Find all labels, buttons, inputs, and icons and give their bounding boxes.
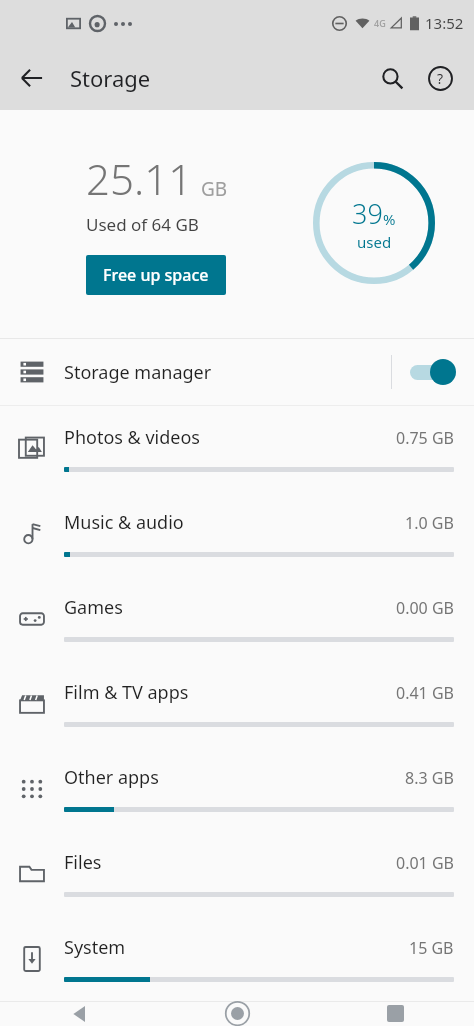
button[interactable]: Photos & videos xyxy=(0,406,474,491)
button[interactable]: Back xyxy=(0,1001,158,1026)
staticText: Music & audio xyxy=(64,510,184,535)
button[interactable]: Free up space xyxy=(86,255,226,295)
button[interactable]: System xyxy=(0,916,474,1001)
button[interactable]: Back xyxy=(8,54,56,102)
staticText: 0.00 GB xyxy=(396,597,454,619)
button[interactable]: Search xyxy=(368,54,416,102)
staticText: 0.01 GB xyxy=(396,852,454,874)
staticText: Used of 64 GB xyxy=(86,213,199,236)
button[interactable]: Music & audio xyxy=(0,491,474,576)
staticText: 25.11 xyxy=(86,150,193,207)
staticText: Games xyxy=(64,595,123,620)
staticText: 0.41 GB xyxy=(396,682,454,704)
staticText: Photos & videos xyxy=(64,425,200,450)
staticText: System xyxy=(64,935,126,960)
staticText: Other apps xyxy=(64,765,159,790)
staticText: 0.75 GB xyxy=(396,427,454,449)
staticText: 39 xyxy=(352,195,383,232)
staticText: % xyxy=(383,209,396,229)
staticText: used xyxy=(357,232,392,252)
button[interactable]: Home xyxy=(158,1001,316,1026)
staticText: ? xyxy=(437,69,444,88)
button[interactable]: Storage manager toggle xyxy=(392,339,474,405)
staticText: 15 GB xyxy=(409,937,454,959)
button[interactable]: Help xyxy=(416,54,464,102)
button[interactable]: Other apps xyxy=(0,746,474,831)
staticText: Files xyxy=(64,850,102,875)
button[interactable]: Film & TV apps xyxy=(0,661,474,746)
staticText: Storage manager xyxy=(64,360,212,385)
staticText: Free up space xyxy=(103,264,209,286)
button[interactable]: Storage manager xyxy=(0,339,474,405)
staticText: 8.3 GB xyxy=(405,767,454,789)
staticText: 1.0 GB xyxy=(405,512,454,534)
staticText: 13:52 xyxy=(425,13,464,33)
button[interactable]: Games xyxy=(0,576,474,661)
staticText: Film & TV apps xyxy=(64,680,189,705)
button[interactable]: Recent apps xyxy=(316,1001,474,1026)
staticText: GB xyxy=(201,176,228,202)
button[interactable]: Files xyxy=(0,831,474,916)
staticText: Storage xyxy=(70,63,151,93)
staticText: 4G xyxy=(374,17,386,29)
